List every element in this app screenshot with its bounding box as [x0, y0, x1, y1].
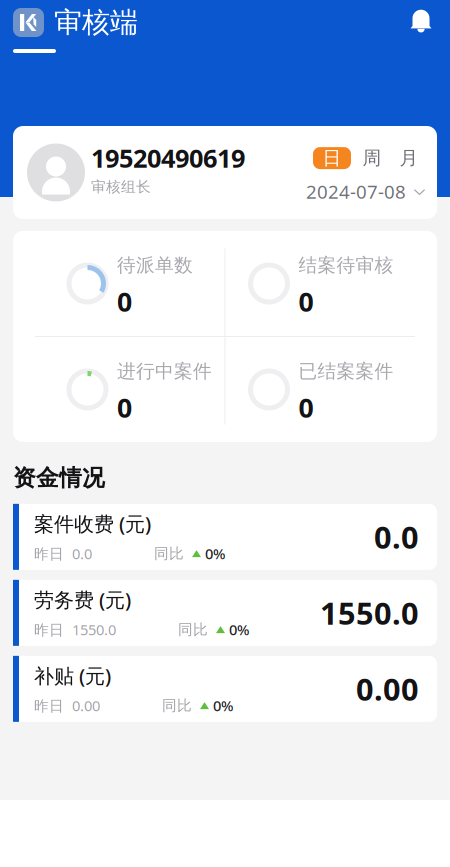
staticText: 1550.0	[320, 592, 419, 633]
staticText: 周	[362, 147, 381, 169]
staticText: 资金情况	[13, 464, 105, 492]
staticText: 0%	[209, 696, 233, 715]
staticText: 结案待审核	[298, 254, 393, 277]
staticText: 0	[298, 284, 313, 319]
staticText: 0	[298, 390, 313, 425]
button[interactable]: 补贴 (元)	[13, 656, 437, 722]
staticText: 补贴 (元)	[34, 662, 111, 689]
staticText: 审核端	[54, 5, 138, 40]
staticText: 昨日 0.00	[34, 696, 100, 715]
staticText: 0	[117, 390, 132, 425]
staticText: 审核组长	[91, 178, 151, 196]
staticText: 同比	[178, 621, 216, 639]
button[interactable]: 案件收费 (元)	[13, 504, 437, 570]
staticText: 0%	[201, 544, 225, 563]
staticText: 进行中案件	[117, 360, 212, 383]
staticText: 0	[117, 284, 132, 319]
button[interactable]: 通知	[406, 8, 436, 33]
staticText: 劳务费 (元)	[34, 586, 131, 613]
staticText: 待派单数	[117, 254, 193, 277]
staticText: 同比	[162, 697, 200, 715]
button[interactable]: 月	[393, 147, 425, 169]
staticText: 0%	[225, 620, 249, 639]
staticText: 0.0	[374, 516, 419, 557]
staticText: 2024-07-08	[306, 179, 406, 204]
button[interactable]: 周	[351, 147, 393, 169]
staticText: 同比	[154, 545, 192, 563]
button[interactable]: 2024-07-08	[306, 179, 425, 204]
staticText: 昨日 1550.0	[34, 620, 116, 639]
staticText: 已结案案件	[298, 360, 393, 383]
staticText: 0.00	[356, 668, 419, 709]
staticText: 19520490619	[91, 141, 245, 175]
staticText: 案件收费 (元)	[34, 510, 151, 537]
staticText: 日	[322, 147, 341, 169]
button[interactable]: 日	[313, 147, 351, 169]
staticText: 月	[399, 147, 418, 169]
button[interactable]: 劳务费 (元)	[13, 580, 437, 646]
staticText: 昨日 0.0	[34, 544, 92, 563]
